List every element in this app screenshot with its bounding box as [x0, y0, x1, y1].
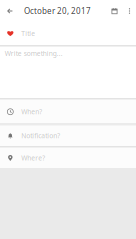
- staticText: Write something...: [5, 49, 63, 58]
- button[interactable]: Back: [0, 0, 20, 22]
- staticText: Title: [21, 29, 35, 38]
- button[interactable]: More options: [123, 0, 136, 22]
- button[interactable]: Where?: [0, 148, 136, 168]
- staticText: When?: [21, 107, 42, 116]
- button[interactable]: When?: [0, 100, 136, 123]
- button[interactable]: Notification?: [0, 125, 136, 146]
- staticText: October 20, 2017: [24, 6, 91, 16]
- button[interactable]: Write something...: [0, 47, 136, 98]
- button[interactable]: Title: [0, 22, 136, 45]
- button[interactable]: Calendar: [106, 0, 123, 22]
- staticText: Notification?: [21, 131, 60, 140]
- staticText: Where?: [21, 154, 45, 162]
